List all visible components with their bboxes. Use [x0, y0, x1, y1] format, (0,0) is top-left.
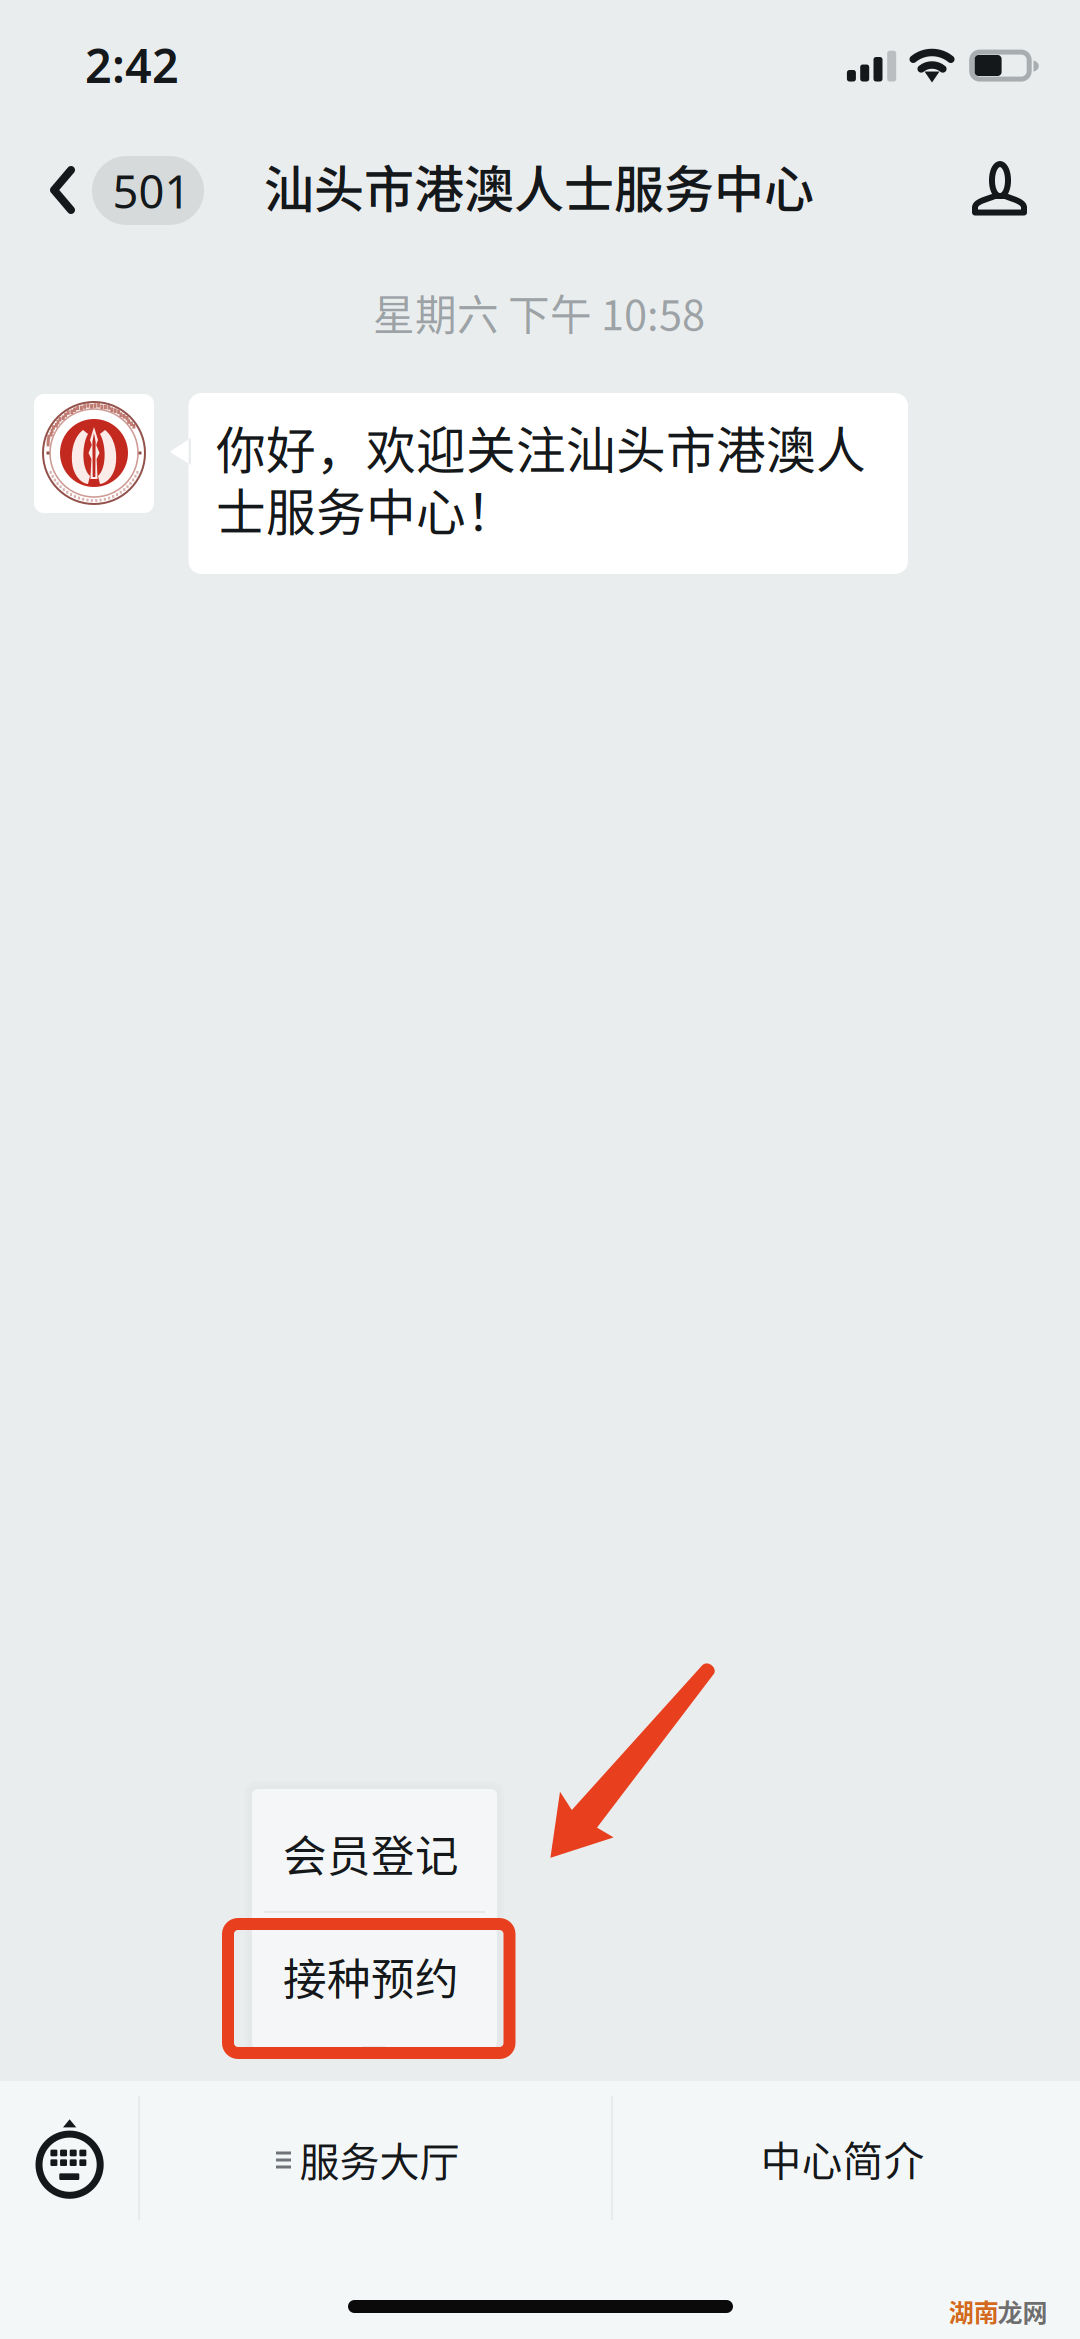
button[interactable]: 服务大厅	[138, 2081, 611, 2231]
staticText: 你好，欢迎关注汕头市港澳人 士服务中心！	[216, 411, 866, 545]
button[interactable]: Official account profile	[955, 144, 1045, 234]
button[interactable]: 会员登记	[252, 1789, 497, 1911]
button[interactable]: Switch to keyboard	[0, 2081, 136, 2231]
staticText: 汕头市港澳人士服务中心	[264, 150, 814, 222]
staticText: 501	[112, 161, 190, 221]
button[interactable]: 中心简介	[613, 2081, 1080, 2231]
staticText: 星期六 下午 10:58	[373, 282, 705, 342]
staticText: 会员登记	[283, 1821, 459, 1884]
staticText: 湖南	[949, 2293, 999, 2329]
staticText: 2:42	[85, 34, 179, 96]
staticText: 龙网	[997, 2293, 1047, 2329]
staticText: 接种预约	[283, 1944, 459, 2007]
staticText: 服务大厅	[300, 2130, 460, 2188]
button[interactable]: 接种预约	[252, 1911, 497, 2049]
button[interactable]: Back to chats, 501 unread	[22, 145, 212, 235]
staticText: 中心简介	[761, 2129, 925, 2188]
